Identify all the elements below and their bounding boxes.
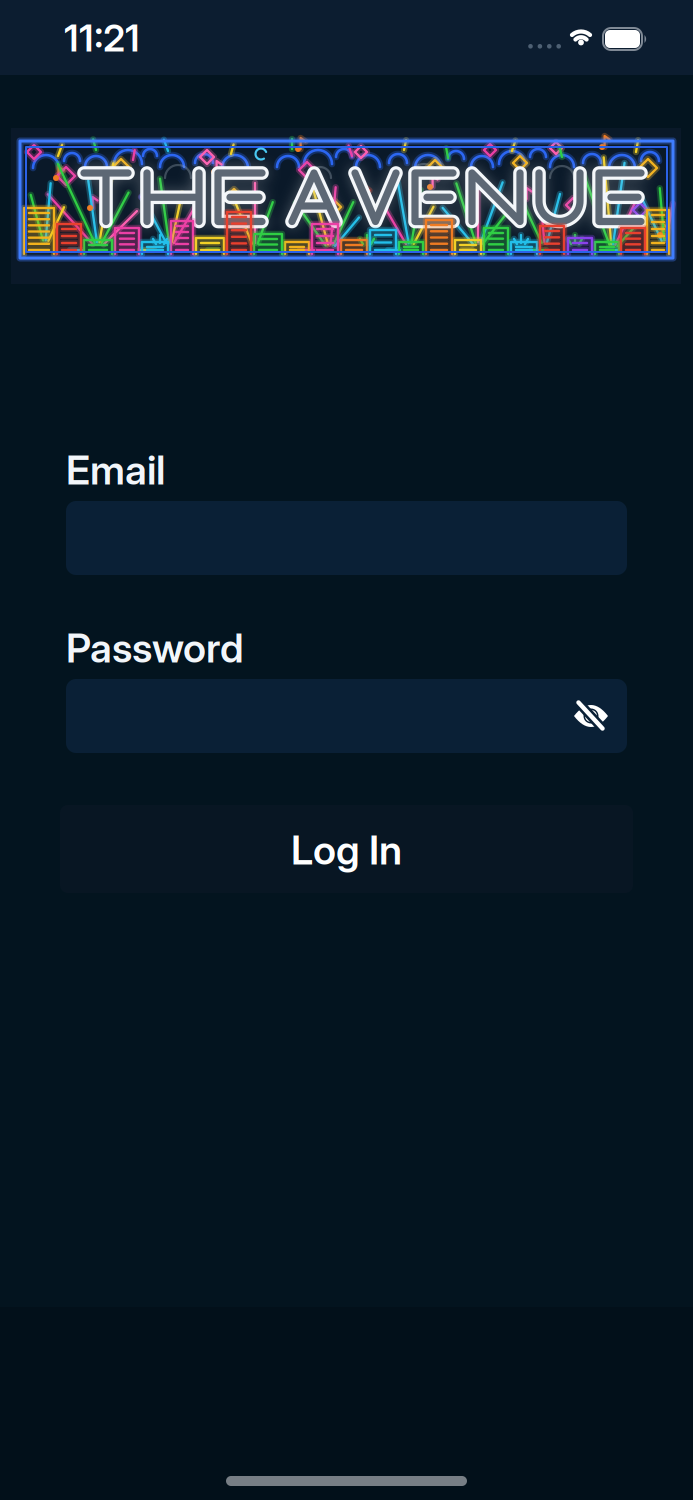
staticText: Log In <box>291 826 402 874</box>
staticText: Email <box>66 446 165 494</box>
staticText: 11:21 <box>64 15 140 61</box>
staticText: Password <box>66 624 244 672</box>
